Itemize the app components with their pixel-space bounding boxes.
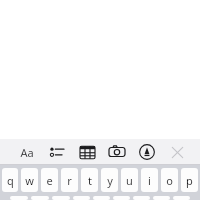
staticText: w	[25, 173, 34, 188]
button[interactable]: Insert table	[74, 140, 100, 164]
button[interactable]: a	[10, 196, 28, 200]
staticText: o	[166, 173, 173, 188]
staticText: Aa	[20, 145, 34, 160]
button[interactable]: s	[31, 196, 49, 200]
staticText: y	[107, 173, 113, 188]
staticText: p	[186, 173, 193, 188]
button[interactable]: Bulleted list	[44, 140, 70, 164]
button[interactable]: y	[101, 168, 118, 192]
button[interactable]: q	[2, 168, 18, 192]
staticText: u	[126, 173, 133, 188]
staticText: q	[7, 173, 14, 188]
button[interactable]: l	[173, 196, 190, 200]
button[interactable]: p	[181, 168, 198, 192]
staticText: t	[88, 173, 92, 188]
button[interactable]: w	[21, 168, 38, 192]
button[interactable]: e	[41, 168, 58, 192]
button[interactable]: d	[52, 196, 70, 200]
button[interactable]: Camera	[104, 140, 130, 164]
button[interactable]: t	[81, 168, 98, 192]
button[interactable]: j	[133, 196, 150, 200]
button[interactable]: r	[61, 168, 78, 192]
button[interactable]: h	[113, 196, 130, 200]
staticText: i	[148, 173, 151, 188]
button[interactable]: i	[141, 168, 158, 192]
staticText: r	[67, 173, 72, 188]
button[interactable]: k	[153, 196, 170, 200]
button[interactable]: o	[161, 168, 178, 192]
button[interactable]: u	[121, 168, 138, 192]
button[interactable]: Aa	[14, 140, 40, 164]
button[interactable]: g	[93, 196, 110, 200]
button[interactable]: Close keyboard	[164, 140, 190, 164]
staticText: e	[46, 173, 53, 188]
button[interactable]: Markup	[134, 140, 160, 164]
button[interactable]: f	[73, 196, 90, 200]
